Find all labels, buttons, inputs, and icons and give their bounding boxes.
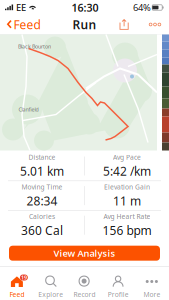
button[interactable]: View Analysis bbox=[9, 246, 160, 261]
staticText: Feed bbox=[13, 16, 40, 32]
staticText: Record bbox=[73, 290, 95, 299]
staticText: 64% bbox=[133, 1, 151, 14]
staticText: 16:30 bbox=[71, 0, 98, 15]
staticText: 156 bpm bbox=[102, 222, 151, 238]
staticText: Moving Time bbox=[22, 182, 63, 191]
staticText: Distance bbox=[29, 153, 56, 162]
staticText: Black Bourton bbox=[18, 43, 51, 50]
staticText: 5:42 /km bbox=[103, 163, 151, 179]
staticText: Run bbox=[72, 16, 96, 32]
button[interactable]: Share bbox=[115, 17, 133, 32]
staticText: Clanfield bbox=[18, 106, 38, 113]
staticText: Feed bbox=[9, 290, 24, 299]
staticText: Elevation Gain bbox=[104, 182, 150, 191]
staticText: 19 bbox=[21, 274, 27, 281]
staticText: Explore bbox=[38, 290, 63, 299]
button[interactable]: Profile bbox=[101, 267, 135, 300]
staticText: Calories bbox=[29, 212, 55, 221]
button[interactable]: Explore bbox=[34, 267, 68, 300]
button[interactable]: Feed bbox=[4, 13, 43, 35]
button[interactable]: More options bbox=[145, 16, 165, 32]
staticText: 360 Cal bbox=[21, 222, 63, 238]
staticText: More bbox=[144, 290, 161, 299]
button[interactable]: More bbox=[135, 267, 169, 300]
staticText: Avg Pace bbox=[113, 153, 141, 162]
staticText: 11 m bbox=[113, 193, 141, 209]
staticText: 5.01 km bbox=[20, 163, 64, 179]
staticText: Avg Heart Rate bbox=[103, 212, 150, 221]
button[interactable]: Record bbox=[68, 267, 101, 300]
staticText: EE bbox=[16, 1, 26, 14]
button[interactable]: 19 bbox=[0, 267, 34, 300]
staticText: Profile bbox=[108, 290, 129, 299]
staticText: 28:34 bbox=[27, 193, 58, 209]
staticText: View Analysis bbox=[53, 247, 115, 259]
